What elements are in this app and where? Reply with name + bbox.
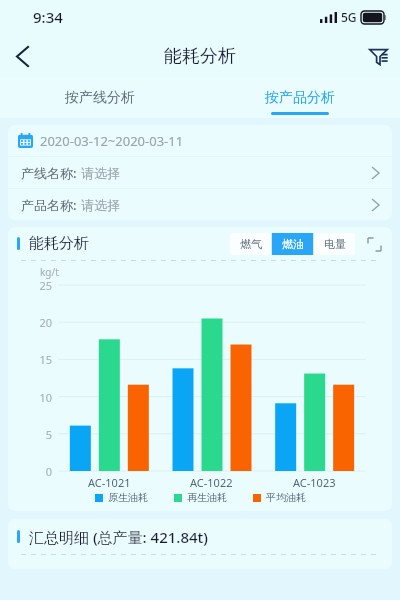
staticText: 10 — [39, 390, 52, 405]
staticText: 0 — [45, 464, 52, 479]
button[interactable]: 电量 — [314, 233, 355, 255]
button[interactable]: 按产品分析 — [200, 78, 400, 118]
staticText: 15 — [39, 352, 52, 367]
staticText: 产品名称: — [21, 196, 77, 214]
button[interactable]: 产品名称: — [8, 189, 392, 220]
staticText: 燃气 — [240, 237, 262, 251]
button[interactable]: 燃油 — [272, 233, 313, 255]
staticText: 9:34 — [33, 7, 63, 27]
button[interactable]: Filter — [356, 34, 400, 78]
staticText: 25 — [39, 278, 52, 293]
button[interactable]: 按产线分析 — [0, 78, 200, 118]
staticText: 请选择 — [81, 165, 120, 181]
staticText: 2020-03-12~2020-03-11 — [40, 132, 184, 150]
button[interactable]: Fullscreen — [364, 234, 384, 254]
staticText: 能耗分析 — [29, 234, 89, 253]
staticText: 产线名称: — [21, 164, 77, 182]
staticText: 再生油耗 — [187, 491, 227, 504]
staticText: 平均油耗 — [266, 491, 306, 504]
staticText: AC-1023 — [293, 475, 336, 490]
staticText: 汇总明细 (总产量: 421.84t) — [29, 527, 208, 547]
staticText: AC-1022 — [190, 475, 233, 490]
staticText: 按产品分析 — [265, 89, 335, 107]
staticText: 请选择 — [81, 197, 120, 213]
staticText: AC-1021 — [88, 475, 131, 490]
staticText: kg/t — [40, 265, 59, 279]
button[interactable]: 产线名称: — [8, 157, 392, 188]
button[interactable]: 燃气 — [230, 233, 271, 255]
staticText: 5 — [45, 427, 52, 442]
staticText: 5G — [341, 9, 357, 25]
staticText: 按产线分析 — [65, 89, 135, 107]
staticText: 燃油 — [282, 237, 304, 251]
staticText: 20 — [39, 315, 52, 330]
staticText: 原生油耗 — [108, 491, 148, 504]
button[interactable]: Back — [0, 34, 44, 78]
staticText: 能耗分析 — [164, 45, 236, 68]
staticText: 电量 — [324, 237, 346, 251]
button[interactable]: 2020-03-12~2020-03-11 — [8, 125, 392, 156]
